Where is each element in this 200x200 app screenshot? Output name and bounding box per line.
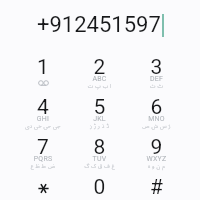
staticText: غ ف ق ک گ (71, 160, 128, 172)
staticText: ٹ ث (128, 80, 185, 92)
staticText: DEF (128, 75, 185, 83)
staticText: ا ب پ ت (71, 80, 128, 92)
button[interactable]: 4 (15, 94, 71, 134)
staticText: 7 (15, 135, 71, 160)
staticText: 9 (128, 135, 185, 160)
button[interactable]: 3 (128, 54, 185, 94)
staticText: 1 (15, 55, 71, 80)
staticText: +912451597 (37, 12, 161, 38)
button[interactable]: 9 (128, 134, 185, 174)
staticText: 8 (71, 135, 128, 160)
button[interactable]: 6 (128, 94, 185, 134)
staticText: م ن و ہ (128, 160, 185, 172)
staticText: TUV (71, 155, 128, 163)
button[interactable]: star (15, 174, 71, 200)
button[interactable]: 2 (71, 54, 128, 94)
button[interactable]: 0 (71, 174, 128, 200)
button[interactable]: 5 (71, 94, 128, 134)
staticText: ژ س ش ص (128, 120, 185, 132)
staticText: 2 (71, 55, 128, 80)
staticText: PQRS (15, 155, 71, 163)
staticText: ABC (71, 75, 128, 83)
button[interactable]: 7 (15, 134, 71, 174)
staticText: ض ط ظ ع (15, 160, 71, 172)
button[interactable]: +912451597 (0, 2, 200, 48)
staticText: 0 (71, 175, 128, 200)
staticText: 5 (71, 95, 128, 120)
staticText: جی حی خی دی (15, 120, 71, 132)
staticText: MNO (128, 115, 185, 123)
staticText: # (128, 175, 185, 200)
staticText: JKL (71, 115, 128, 123)
button[interactable]: 1 voicemail (15, 54, 71, 94)
button[interactable]: # (128, 174, 185, 200)
staticText: 6 (128, 95, 185, 120)
staticText: 3 (128, 55, 185, 80)
button[interactable]: 8 (71, 134, 128, 174)
staticText: ڈ ذ ر ڑ ز (71, 120, 128, 132)
staticText: GHI (15, 115, 71, 123)
staticText: 4 (15, 95, 71, 120)
staticText: WXYZ (128, 155, 185, 163)
